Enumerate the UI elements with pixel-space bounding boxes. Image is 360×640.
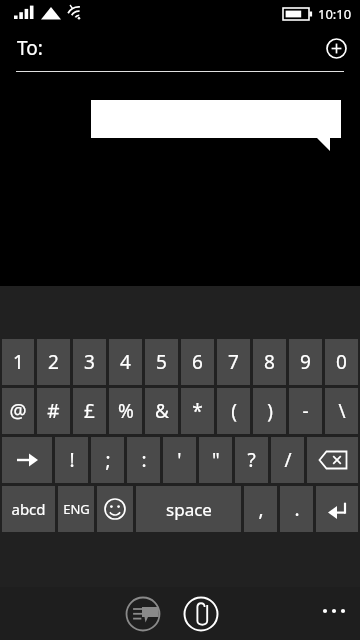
button[interactable]: ? xyxy=(235,437,268,483)
button[interactable]: £ xyxy=(73,388,106,434)
staticText: # xyxy=(47,398,60,424)
button[interactable]: 2 xyxy=(37,339,70,385)
button[interactable]: Backspace xyxy=(307,437,358,483)
staticText: 1 xyxy=(13,349,24,375)
button[interactable]: ) xyxy=(253,388,286,434)
button[interactable]: 6 xyxy=(181,339,214,385)
staticText: 0 xyxy=(336,349,347,375)
staticText: ) xyxy=(267,398,273,424)
staticText: 5 xyxy=(156,349,167,375)
button[interactable]: . xyxy=(280,486,313,532)
button[interactable]: 1 xyxy=(2,339,34,385)
staticText: % xyxy=(118,398,134,424)
button[interactable]: % xyxy=(109,388,142,434)
button[interactable]: , xyxy=(244,486,277,532)
staticText: ; xyxy=(105,447,111,473)
staticText: , xyxy=(258,496,264,522)
button[interactable]: - xyxy=(289,388,322,434)
staticText: ENG xyxy=(63,500,90,518)
button[interactable]: Tab xyxy=(2,437,52,483)
button[interactable]: Add recipient xyxy=(323,35,349,61)
button[interactable]: Send message xyxy=(122,593,164,635)
staticText: 8 xyxy=(264,349,275,375)
button[interactable]: : xyxy=(127,437,160,483)
button[interactable]: ' xyxy=(163,437,196,483)
staticText: ! xyxy=(69,447,75,473)
staticText: ( xyxy=(231,398,237,424)
staticText: abcd xyxy=(11,499,46,519)
staticText: space xyxy=(166,498,212,521)
button[interactable]: \ xyxy=(325,388,358,434)
staticText: - xyxy=(302,398,309,424)
staticText: 6 xyxy=(192,349,203,375)
button[interactable]: ( xyxy=(217,388,250,434)
button[interactable]: 4 xyxy=(109,339,142,385)
button[interactable]: @ xyxy=(2,388,34,434)
button[interactable]: ; xyxy=(91,437,124,483)
button[interactable]: Attach xyxy=(180,593,222,635)
button[interactable]: 0 xyxy=(325,339,358,385)
button[interactable]: space xyxy=(136,486,241,532)
staticText: ? xyxy=(247,447,256,473)
button[interactable]: * xyxy=(181,388,214,434)
staticText: : xyxy=(141,447,147,473)
staticText: 3 xyxy=(84,349,95,375)
staticText: " xyxy=(212,447,220,473)
button[interactable]: & xyxy=(145,388,178,434)
staticText: @ xyxy=(9,398,27,424)
staticText: 9 xyxy=(300,349,311,375)
staticText: 7 xyxy=(228,349,239,375)
staticText: ' xyxy=(177,447,182,473)
button[interactable]: More options xyxy=(312,592,356,636)
staticText: £ xyxy=(84,398,95,424)
button[interactable]: # xyxy=(37,388,70,434)
button[interactable]: / xyxy=(271,437,304,483)
staticText: * xyxy=(192,398,203,424)
staticText: 4 xyxy=(120,349,131,375)
button[interactable]: Message bubble xyxy=(0,72,360,286)
button[interactable]: 5 xyxy=(145,339,178,385)
button[interactable]: abcd xyxy=(2,486,55,532)
button[interactable]: ENG xyxy=(58,486,94,532)
staticText: . xyxy=(294,496,300,522)
staticText: / xyxy=(284,447,292,473)
staticText: 2 xyxy=(48,349,59,375)
button[interactable]: " xyxy=(199,437,232,483)
staticText: & xyxy=(155,398,169,424)
staticText: To: xyxy=(17,35,43,61)
button[interactable]: 9 xyxy=(289,339,322,385)
button[interactable]: 7 xyxy=(217,339,250,385)
button[interactable]: 3 xyxy=(73,339,106,385)
button[interactable]: ! xyxy=(55,437,88,483)
button[interactable]: Enter xyxy=(316,486,358,532)
staticText: 10:10 xyxy=(318,5,352,23)
button[interactable]: 8 xyxy=(253,339,286,385)
button[interactable]: Emoji xyxy=(97,486,133,532)
staticText: \ xyxy=(338,398,346,424)
